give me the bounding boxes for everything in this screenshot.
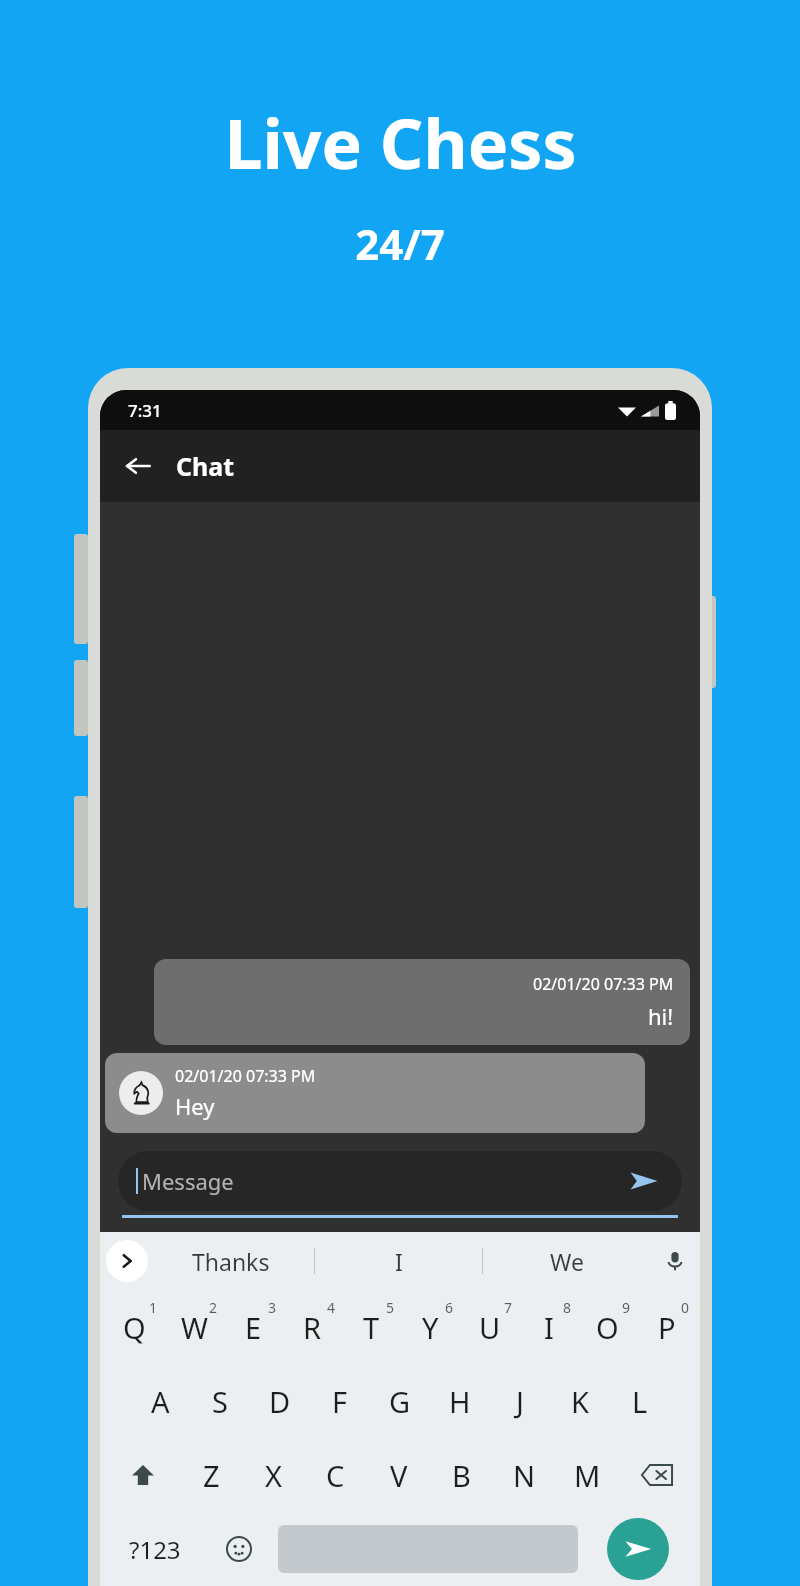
staticText: 8 xyxy=(563,1298,572,1317)
staticText: Y xyxy=(422,1308,439,1347)
button[interactable]: W xyxy=(164,1290,224,1364)
staticText: U xyxy=(479,1308,501,1347)
staticText: 02/01/20 07:33 PM xyxy=(175,1065,316,1087)
staticText: 7:31 xyxy=(128,399,162,422)
button[interactable]: Backspace xyxy=(619,1438,694,1512)
button[interactable]: Back xyxy=(114,442,162,490)
staticText: P xyxy=(658,1308,676,1347)
button[interactable]: More suggestions xyxy=(106,1240,148,1282)
staticText: Thanks xyxy=(192,1246,270,1277)
button[interactable]: J xyxy=(490,1364,550,1438)
button[interactable]: Message xyxy=(118,1151,682,1211)
staticText: 3 xyxy=(268,1298,277,1317)
button[interactable]: 02/01/20 07:33 PM xyxy=(105,1053,645,1133)
button[interactable]: F xyxy=(310,1364,370,1438)
button[interactable]: P xyxy=(637,1290,696,1364)
staticText: Z xyxy=(203,1456,220,1495)
staticText: 24/7 xyxy=(355,215,445,272)
button[interactable]: Send xyxy=(624,1161,664,1201)
staticText: 0 xyxy=(681,1298,690,1317)
staticText: 7 xyxy=(504,1298,513,1317)
button[interactable]: Send message xyxy=(582,1512,694,1586)
staticText: X xyxy=(265,1456,282,1495)
staticText: Q xyxy=(123,1308,146,1347)
button[interactable]: Thanks xyxy=(148,1232,314,1290)
staticText: 5 xyxy=(386,1298,395,1317)
staticText: Message xyxy=(142,1166,234,1196)
staticText: S xyxy=(212,1382,228,1421)
staticText: K xyxy=(571,1382,589,1421)
button[interactable]: T xyxy=(342,1290,401,1364)
staticText: ?123 xyxy=(129,1533,181,1566)
staticText: J xyxy=(516,1382,524,1421)
button[interactable]: Y xyxy=(401,1290,460,1364)
staticText: F xyxy=(332,1382,348,1421)
staticText: O xyxy=(596,1308,619,1347)
staticText: I xyxy=(544,1308,554,1347)
staticText: 9 xyxy=(622,1298,631,1317)
button[interactable]: C xyxy=(304,1438,367,1512)
button[interactable]: U xyxy=(460,1290,519,1364)
staticText: hi! xyxy=(648,1001,674,1031)
staticText: V xyxy=(390,1456,408,1495)
staticText: Live Chess xyxy=(224,96,577,189)
button[interactable]: N xyxy=(493,1438,556,1512)
button[interactable]: K xyxy=(550,1364,610,1438)
staticText: W xyxy=(181,1308,208,1347)
staticText: 2 xyxy=(209,1298,218,1317)
staticText: B xyxy=(452,1456,471,1495)
button[interactable]: G xyxy=(370,1364,430,1438)
staticText: N xyxy=(513,1456,536,1495)
button[interactable]: O xyxy=(578,1290,637,1364)
button[interactable]: M xyxy=(556,1438,619,1512)
button[interactable]: V xyxy=(367,1438,430,1512)
button[interactable]: A xyxy=(130,1364,190,1438)
button[interactable]: Q xyxy=(104,1290,164,1364)
staticText: I xyxy=(395,1246,403,1277)
button[interactable]: X xyxy=(242,1438,304,1512)
button[interactable]: Z xyxy=(180,1438,242,1512)
staticText: R xyxy=(303,1308,322,1347)
button[interactable]: R xyxy=(283,1290,342,1364)
button[interactable]: B xyxy=(430,1438,493,1512)
staticText: D xyxy=(269,1382,291,1421)
button[interactable]: Voice input xyxy=(650,1232,700,1290)
button[interactable]: Shift xyxy=(106,1438,180,1512)
staticText: M xyxy=(574,1456,601,1495)
button[interactable]: D xyxy=(250,1364,310,1438)
staticText: 6 xyxy=(445,1298,454,1317)
button[interactable]: L xyxy=(610,1364,670,1438)
staticText: C xyxy=(326,1456,345,1495)
staticText: We xyxy=(550,1246,584,1277)
button[interactable]: 02/01/20 07:33 PM xyxy=(154,959,690,1045)
button[interactable]: S xyxy=(190,1364,250,1438)
button[interactable]: I xyxy=(519,1290,578,1364)
staticText: E xyxy=(245,1308,262,1347)
staticText: Chat xyxy=(176,449,235,483)
staticText: 4 xyxy=(327,1298,336,1317)
button[interactable]: Emoji xyxy=(204,1512,274,1586)
staticText: Hey xyxy=(175,1091,215,1121)
staticText: 1 xyxy=(149,1298,158,1317)
button[interactable]: ?123 xyxy=(106,1512,204,1586)
staticText: H xyxy=(449,1382,471,1421)
staticText: L xyxy=(632,1382,648,1421)
button[interactable]: H xyxy=(430,1364,490,1438)
staticText: A xyxy=(151,1382,170,1421)
staticText: T xyxy=(363,1308,380,1347)
button[interactable]: I xyxy=(315,1232,482,1290)
button[interactable]: We xyxy=(483,1232,650,1290)
staticText: 02/01/20 07:33 PM xyxy=(533,973,674,995)
staticText: G xyxy=(389,1382,411,1421)
button[interactable]: E xyxy=(224,1290,283,1364)
